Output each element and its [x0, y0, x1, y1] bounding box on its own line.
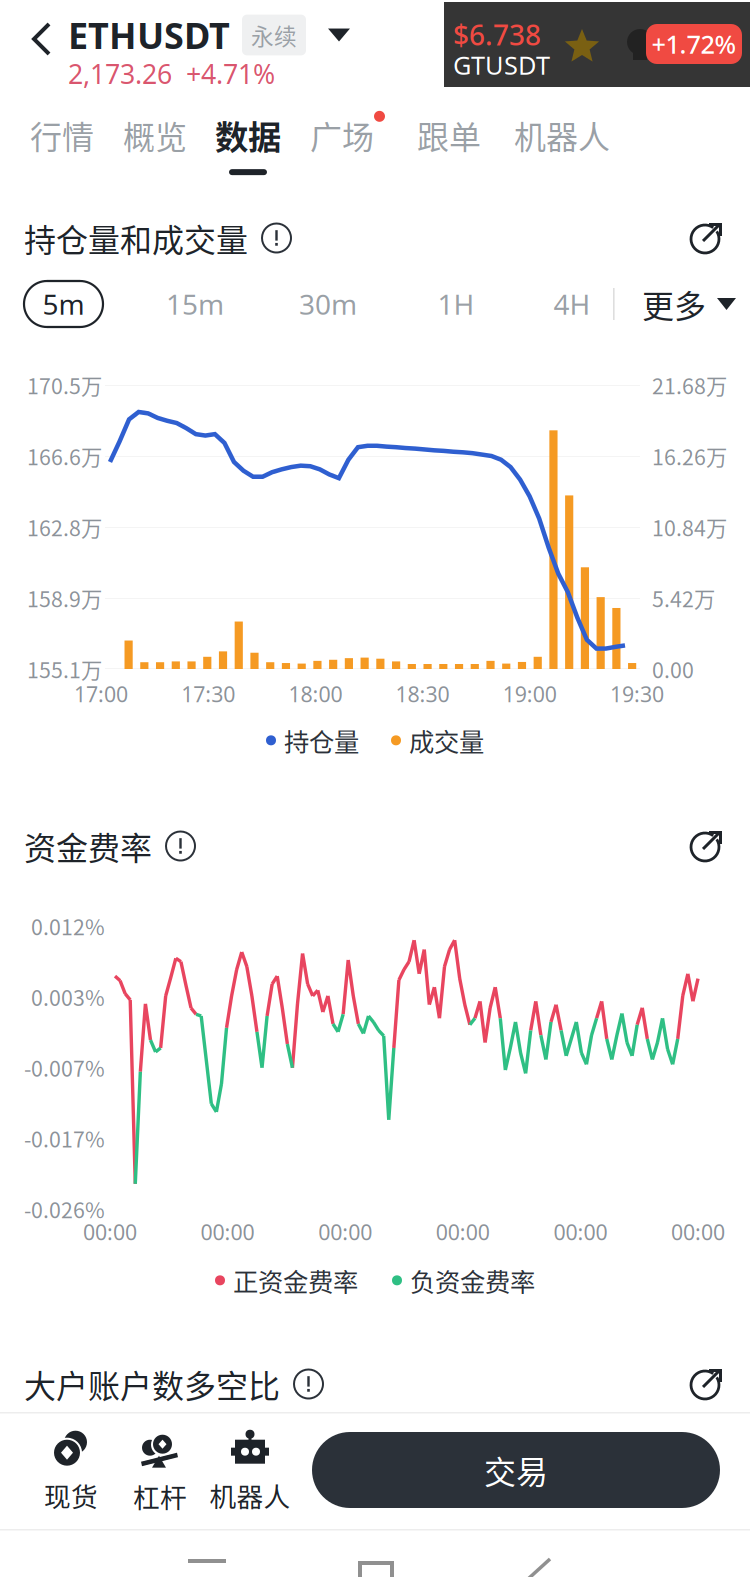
button[interactable]: Back — [16, 14, 68, 64]
staticText: 19:00 — [503, 680, 557, 708]
staticText: 15m — [166, 285, 224, 323]
button[interactable]: Expand chart — [688, 827, 726, 865]
button[interactable]: 4H — [532, 281, 612, 327]
button[interactable]: 30m — [288, 281, 368, 327]
staticText: 00:00 — [318, 1218, 372, 1246]
staticText: 负资金费率 — [410, 1262, 535, 1299]
staticText: $6.738 — [453, 16, 541, 53]
staticText: 21.68万 — [652, 370, 727, 400]
staticText: 资金费率 — [24, 823, 152, 869]
staticText: 00:00 — [671, 1218, 725, 1246]
staticText: 00:00 — [201, 1218, 255, 1246]
staticText: 155.1万 — [27, 654, 102, 684]
staticText: 30m — [299, 285, 357, 323]
staticText: 广场 — [310, 112, 374, 158]
staticText: 大户账户数多空比 — [24, 1361, 280, 1407]
staticText: 0.00 — [652, 654, 694, 684]
button[interactable]: 永续 — [242, 15, 306, 55]
staticText: 跟单 — [417, 112, 481, 158]
staticText: 现货 — [44, 1476, 98, 1514]
button[interactable]: Expand chart — [688, 1365, 726, 1403]
staticText: +1.72% — [651, 27, 736, 61]
button[interactable]: 数据 — [215, 108, 281, 178]
button[interactable]: GTUSDT price alert — [444, 2, 750, 87]
staticText: 行情 — [30, 112, 94, 158]
button[interactable]: 机器人 — [514, 108, 610, 178]
button[interactable]: 概览 — [123, 108, 187, 178]
staticText: 持仓量 — [284, 722, 359, 759]
button[interactable]: 1H — [416, 281, 496, 327]
button[interactable]: 更多 — [642, 281, 736, 327]
staticText: 166.6万 — [27, 441, 102, 471]
staticText: 0.012% — [31, 911, 105, 941]
staticText: 17:30 — [181, 680, 235, 708]
button[interactable]: Expand chart — [688, 219, 726, 257]
staticText: 数据 — [215, 111, 281, 159]
staticText: 170.5万 — [27, 370, 102, 400]
staticText: -0.026% — [24, 1194, 105, 1224]
staticText: 永续 — [251, 19, 297, 51]
staticText: GTUSDT — [453, 48, 550, 82]
button[interactable]: 现货 — [26, 1433, 116, 1511]
staticText: 18:00 — [288, 680, 342, 708]
button[interactable]: 交易 — [312, 1432, 720, 1508]
staticText: 18:30 — [396, 680, 450, 708]
staticText: 概览 — [123, 112, 187, 158]
staticText: 机器人 — [209, 1476, 290, 1514]
staticText: 1H — [437, 285, 474, 323]
staticText: 交易 — [484, 1447, 548, 1493]
staticText: 5m — [42, 285, 84, 323]
staticText: 19:30 — [610, 680, 664, 708]
staticText: 更多 — [642, 281, 706, 327]
staticText: 正资金费率 — [233, 1262, 358, 1299]
staticText: 持仓量和成交量 — [24, 215, 248, 261]
button[interactable]: 机器人 — [205, 1433, 295, 1511]
staticText: 5.42万 — [652, 583, 715, 613]
staticText: -0.017% — [24, 1123, 105, 1154]
staticText: 162.8万 — [27, 512, 102, 542]
staticText: 4H — [553, 285, 590, 323]
staticText: 00:00 — [436, 1218, 490, 1246]
button[interactable]: 行情 — [30, 108, 94, 178]
staticText: -0.007% — [24, 1052, 105, 1083]
button[interactable]: 5m — [24, 281, 103, 327]
staticText: 16.26万 — [652, 441, 727, 471]
staticText: 00:00 — [553, 1218, 607, 1246]
button[interactable]: 广场 — [310, 108, 374, 178]
staticText: 10.84万 — [652, 512, 727, 542]
staticText: 机器人 — [514, 112, 610, 158]
staticText: 0.003% — [31, 981, 105, 1012]
staticText: 2,173.26 — [68, 56, 172, 91]
staticText: 17:00 — [74, 680, 128, 708]
button[interactable]: 跟单 — [417, 108, 481, 178]
staticText: +4.71% — [186, 56, 275, 91]
staticText: 成交量 — [409, 722, 484, 759]
staticText: 00:00 — [83, 1218, 137, 1246]
staticText: 杠杆 — [133, 1477, 187, 1515]
staticText: 158.9万 — [27, 583, 102, 613]
staticText: ETHUSDT — [68, 11, 230, 59]
button[interactable]: 15m — [155, 281, 235, 327]
button[interactable]: 杠杆 — [115, 1433, 205, 1511]
button[interactable]: Switch contract — [322, 17, 356, 53]
